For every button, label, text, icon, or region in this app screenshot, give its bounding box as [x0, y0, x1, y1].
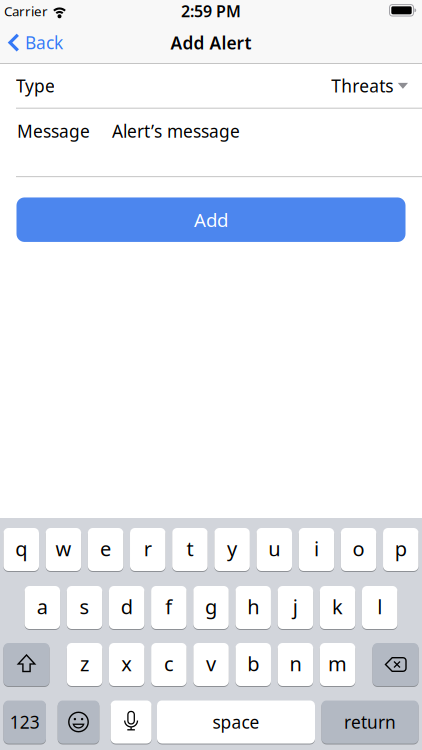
button[interactable]: return	[321, 700, 418, 744]
button[interactable]: l	[362, 585, 397, 629]
staticText: b	[247, 650, 259, 677]
button[interactable]: j	[278, 585, 313, 629]
staticText: w	[55, 535, 71, 562]
button[interactable]: d	[109, 585, 144, 629]
staticText: 2:59 PM	[181, 0, 241, 22]
button[interactable]: t	[172, 527, 208, 571]
button[interactable]: e	[88, 527, 123, 571]
staticText: z	[80, 650, 89, 677]
staticText: t	[186, 535, 193, 562]
button[interactable]: a	[25, 585, 60, 629]
button[interactable]: n	[278, 642, 313, 686]
staticText: m	[328, 650, 347, 677]
button[interactable]: v	[193, 642, 229, 686]
button[interactable]: k	[320, 585, 355, 629]
button[interactable]: f	[151, 585, 187, 629]
staticText: Alert’s message	[112, 119, 240, 142]
staticText: i	[314, 535, 319, 562]
staticText: space	[212, 710, 259, 733]
staticText: y	[227, 535, 237, 562]
button[interactable]: m	[320, 642, 355, 686]
button[interactable]: c	[151, 642, 187, 686]
staticText: Message	[17, 119, 90, 142]
button[interactable]: Back	[8, 24, 63, 62]
staticText: r	[144, 535, 152, 562]
staticText: Type	[16, 74, 55, 97]
staticText: a	[37, 593, 48, 620]
button[interactable]: Delete	[372, 642, 418, 686]
staticText: f	[165, 593, 172, 620]
button[interactable]: Emoji	[58, 700, 99, 744]
staticText: Carrier	[4, 2, 48, 20]
button[interactable]: p	[383, 527, 418, 571]
button[interactable]: z	[67, 642, 102, 686]
button[interactable]: w	[46, 527, 81, 571]
button[interactable]: g	[193, 585, 229, 629]
staticText: Back	[25, 31, 63, 54]
button[interactable]: 123	[3, 700, 46, 744]
staticText: d	[121, 593, 133, 620]
button[interactable]: u	[256, 527, 292, 571]
button[interactable]: space	[157, 700, 315, 744]
staticText: k	[332, 593, 343, 620]
staticText: l	[377, 593, 382, 620]
staticText: j	[293, 593, 298, 620]
staticText: Threats	[331, 74, 393, 97]
button[interactable]: Shift	[3, 642, 49, 686]
staticText: 123	[10, 710, 40, 733]
button[interactable]: Alert’s message	[0, 97, 422, 165]
staticText: h	[247, 593, 259, 620]
staticText: q	[15, 535, 27, 562]
button[interactable]: b	[235, 642, 271, 686]
staticText: v	[206, 650, 216, 677]
button[interactable]: y	[214, 527, 250, 571]
button[interactable]: i	[299, 527, 334, 571]
button[interactable]: r	[130, 527, 165, 571]
button[interactable]: Type	[0, 63, 422, 108]
button[interactable]: Dictate	[111, 700, 152, 744]
staticText: x	[121, 650, 132, 677]
staticText: return	[344, 710, 396, 733]
staticText: s	[79, 593, 89, 620]
button[interactable]: s	[67, 585, 102, 629]
button[interactable]: h	[235, 585, 271, 629]
staticText: c	[164, 650, 174, 677]
staticText: n	[289, 650, 301, 677]
staticText: e	[100, 535, 111, 562]
button[interactable]: o	[341, 527, 376, 571]
button[interactable]: q	[3, 527, 39, 571]
button[interactable]: Add	[16, 197, 405, 242]
staticText: u	[268, 535, 280, 562]
staticText: p	[395, 535, 407, 562]
staticText: o	[353, 535, 365, 562]
button[interactable]: x	[109, 642, 144, 686]
staticText: Add Alert	[170, 31, 251, 54]
staticText: g	[205, 593, 217, 620]
staticText: Add	[194, 207, 228, 232]
